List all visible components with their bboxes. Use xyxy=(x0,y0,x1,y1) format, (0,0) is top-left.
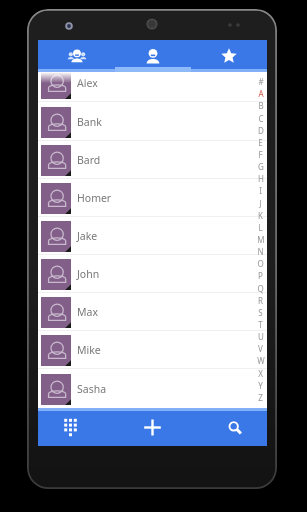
button[interactable]: Dialpad xyxy=(38,408,103,446)
staticText: A xyxy=(258,88,264,99)
button[interactable]: Jake xyxy=(38,217,267,255)
staticText: O xyxy=(257,258,264,269)
staticText: B xyxy=(258,100,264,111)
staticText: P xyxy=(258,270,263,281)
staticText: E xyxy=(258,137,263,148)
button[interactable]: Search xyxy=(202,408,267,446)
staticText: X xyxy=(258,368,263,379)
button[interactable]: Favorites xyxy=(191,40,267,72)
button[interactable]: Bard xyxy=(38,141,267,179)
staticText: Q xyxy=(257,283,264,294)
staticText: # xyxy=(258,76,264,87)
button[interactable]: John xyxy=(38,255,267,293)
staticText: D xyxy=(258,125,264,136)
button[interactable]: Contacts xyxy=(115,40,191,72)
staticText: Y xyxy=(258,380,263,391)
staticText: R xyxy=(258,295,263,306)
staticText: Homer xyxy=(77,191,112,205)
staticText: Max xyxy=(77,305,98,319)
button[interactable]: Groups xyxy=(38,40,115,72)
staticText: T xyxy=(258,319,263,330)
staticText: Sasha xyxy=(77,382,107,396)
staticText: F xyxy=(258,149,263,160)
button[interactable]: Mike xyxy=(38,331,267,369)
button[interactable]: Sasha xyxy=(38,370,267,408)
button[interactable]: Homer xyxy=(38,179,267,217)
button[interactable]: Bank xyxy=(38,103,267,141)
staticText: G xyxy=(258,161,264,172)
staticText: Alex xyxy=(77,76,98,90)
staticText: I xyxy=(259,185,262,196)
staticText: L xyxy=(258,222,263,233)
staticText: C xyxy=(258,113,264,124)
staticText: John xyxy=(77,267,100,281)
button[interactable]: Alex xyxy=(38,72,267,102)
button[interactable]: Add contact xyxy=(120,408,185,446)
button[interactable]: Max xyxy=(38,293,267,331)
staticText: J xyxy=(259,198,262,209)
staticText: K xyxy=(258,210,263,221)
staticText: W xyxy=(257,355,265,366)
staticText: Z xyxy=(258,392,263,403)
staticText: H xyxy=(258,173,264,184)
staticText: S xyxy=(258,307,263,318)
staticText: Jake xyxy=(77,229,98,243)
staticText: N xyxy=(257,246,264,257)
staticText: Bard xyxy=(77,153,101,167)
staticText: U xyxy=(258,331,264,342)
staticText: V xyxy=(258,343,263,354)
staticText: M xyxy=(257,234,265,245)
staticText: Mike xyxy=(77,343,101,357)
staticText: Bank xyxy=(77,115,102,129)
